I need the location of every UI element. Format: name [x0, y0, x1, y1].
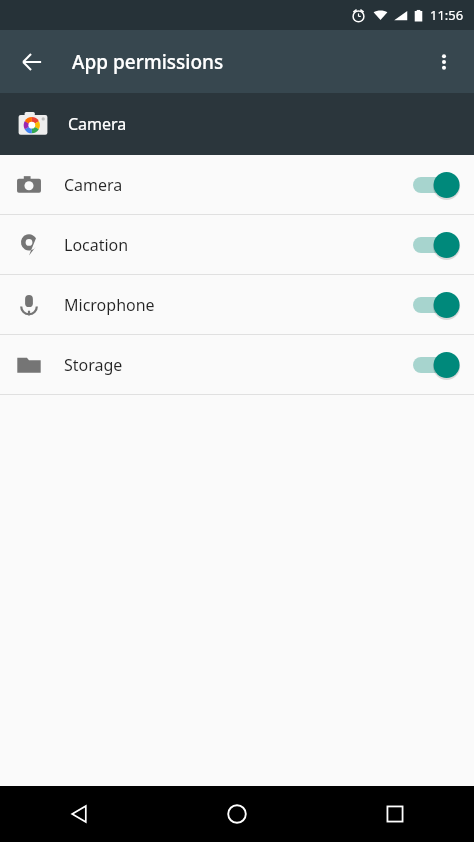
button[interactable]: Recent apps — [316, 786, 474, 842]
staticText: Microphone — [64, 294, 408, 316]
button[interactable]: Back — [0, 786, 158, 842]
button[interactable]: More options — [420, 38, 468, 86]
button[interactable]: Home — [158, 786, 316, 842]
button[interactable]: Location — [0, 215, 474, 274]
staticText: App permissions — [72, 49, 224, 75]
staticText: Camera — [64, 174, 408, 196]
staticText: Location — [64, 234, 408, 256]
staticText: Storage — [64, 354, 408, 376]
button[interactable]: Back — [8, 38, 56, 86]
button[interactable]: Camera — [0, 155, 474, 214]
button[interactable]: Microphone — [0, 275, 474, 334]
button[interactable]: Storage — [0, 335, 474, 394]
staticText: Camera — [68, 113, 127, 135]
staticText: 11:56 — [430, 6, 464, 24]
button[interactable]: Camera — [0, 93, 474, 155]
